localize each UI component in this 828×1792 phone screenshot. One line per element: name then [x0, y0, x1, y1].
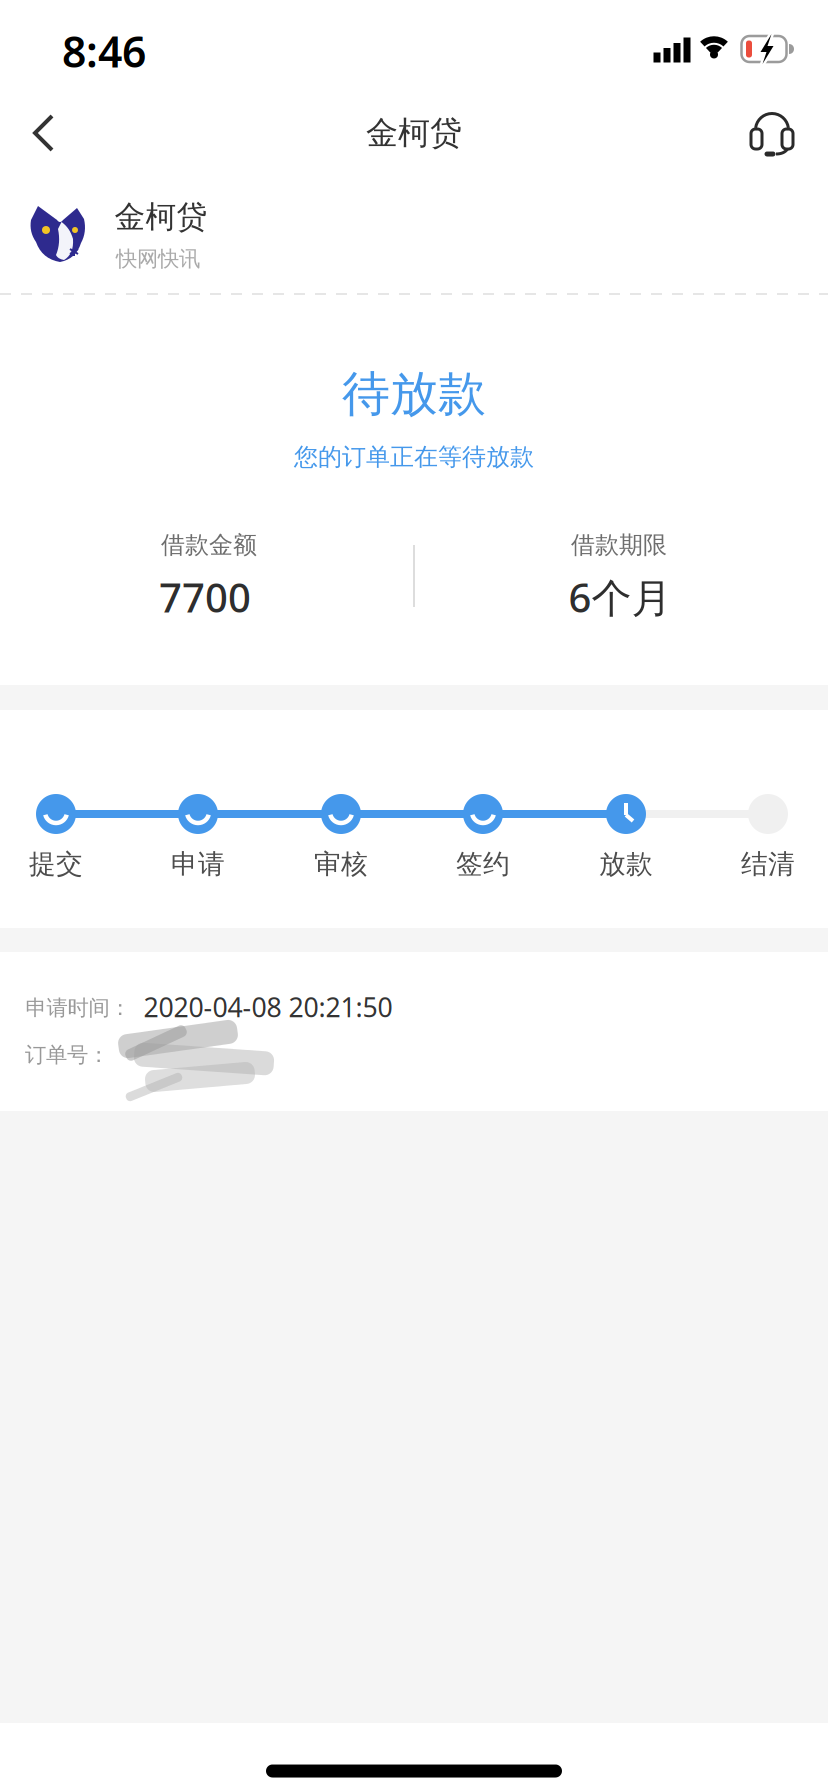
staticText: 提交	[29, 848, 83, 880]
staticText: 7700	[159, 570, 251, 623]
staticText: 2020-04-08 20:21:50	[143, 989, 392, 1025]
staticText: 审核	[314, 848, 368, 880]
staticText: 签约	[456, 848, 510, 880]
staticText: 申请	[171, 848, 225, 880]
staticText: 6个月	[568, 570, 671, 623]
staticText: 借款金额	[161, 530, 257, 560]
staticText: 放款	[599, 848, 653, 880]
staticText: 申请时间：	[25, 995, 130, 1021]
staticText: 快网快讯	[116, 246, 200, 272]
button[interactable]: Customer service	[742, 103, 802, 163]
staticText: 订单号：	[25, 1042, 109, 1068]
staticText: 金柯贷	[366, 113, 462, 153]
staticText: 金柯贷	[114, 198, 207, 236]
staticText: 您的订单正在等待放款	[294, 442, 534, 472]
staticText: 借款期限	[571, 530, 667, 560]
staticText: 待放款	[342, 364, 486, 423]
button[interactable]: Back	[14, 103, 74, 163]
staticText: 8:46	[62, 23, 146, 79]
staticText: 结清	[741, 848, 795, 880]
